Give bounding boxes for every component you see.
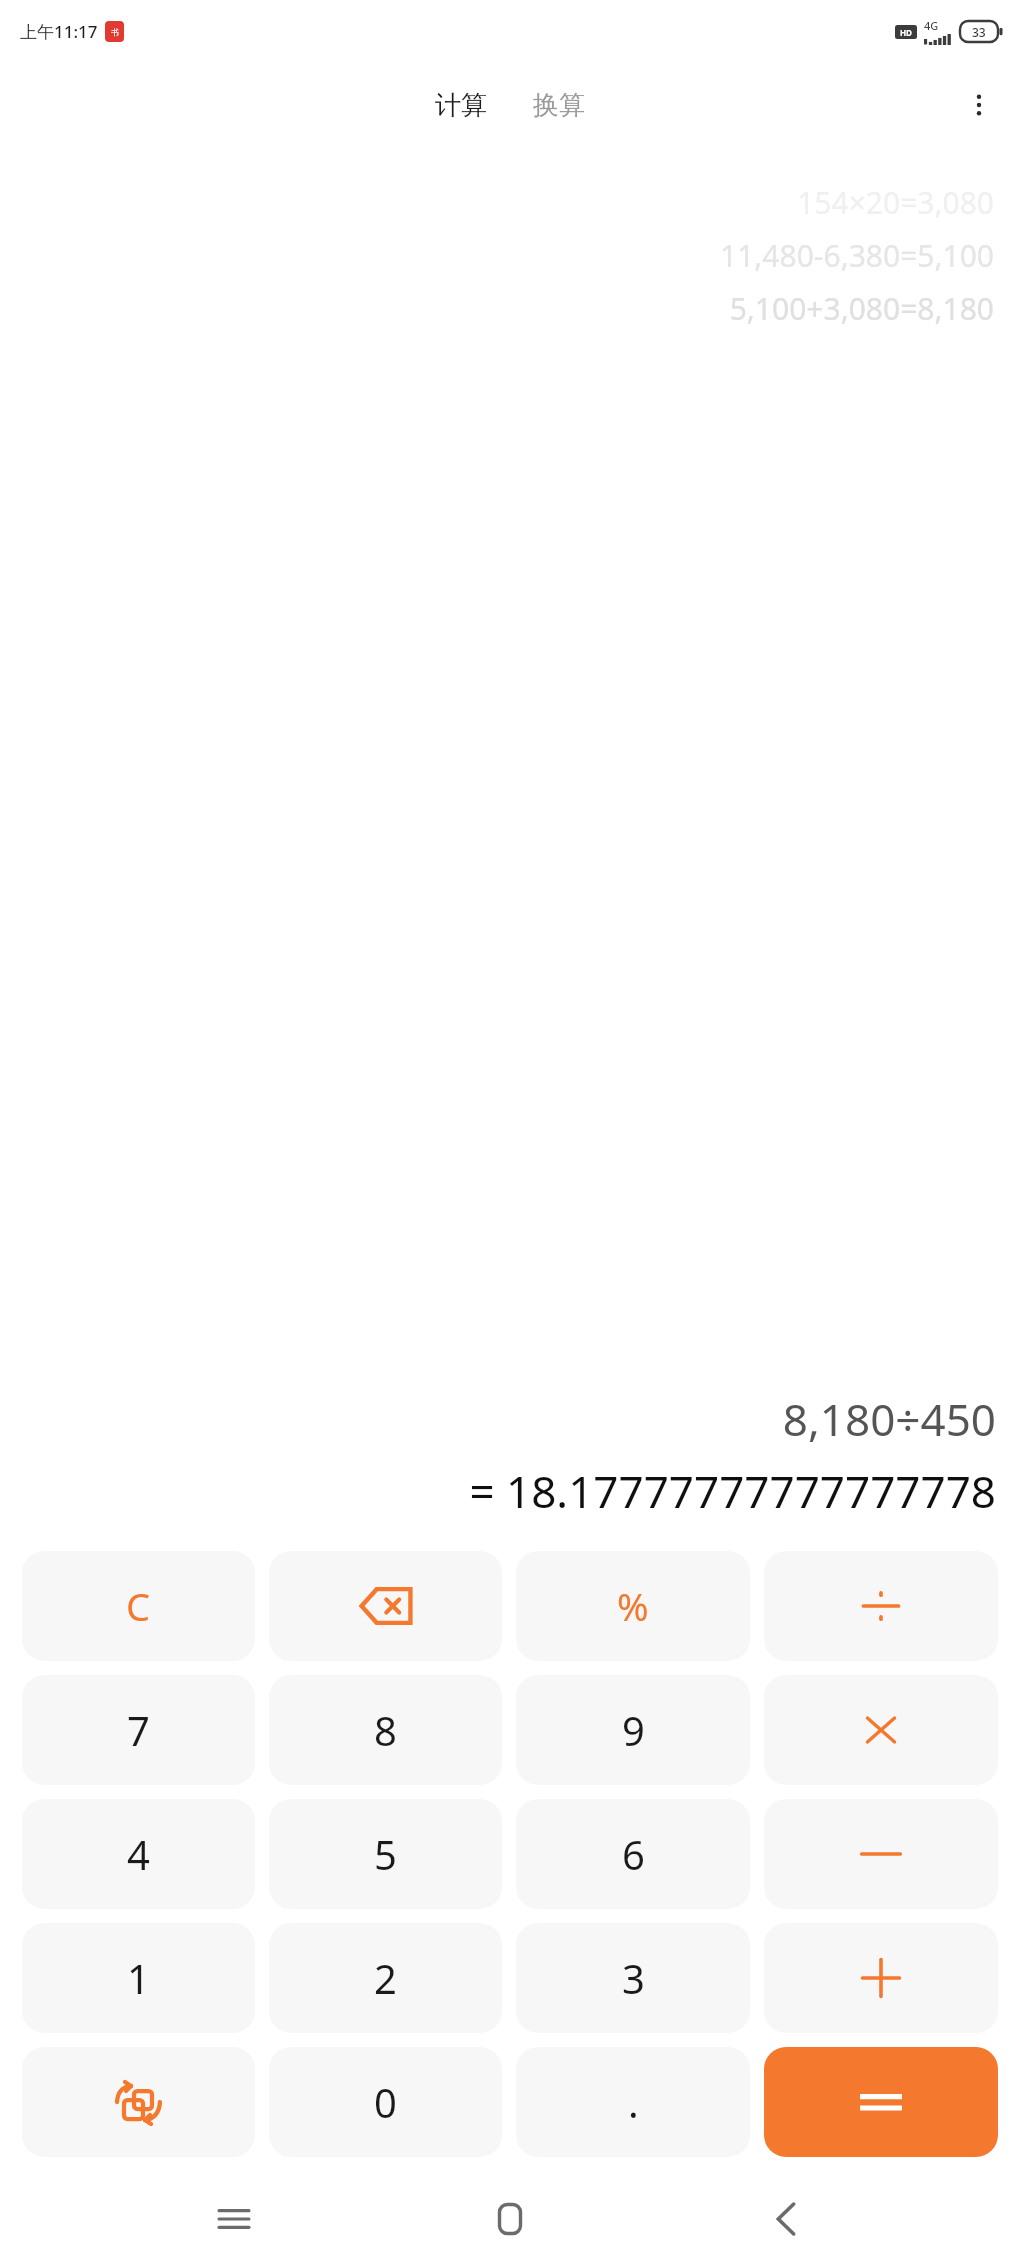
staticText: 11,480-6,380=5,100 [719, 235, 994, 276]
other: Backspace [360, 1587, 412, 1625]
staticText: 7 [127, 1703, 150, 1757]
other: Equals [858, 2087, 904, 2117]
staticText: 154×20=3,080 [797, 182, 994, 223]
staticText: 33 [972, 24, 986, 40]
staticText: 5,100+3,080=8,180 [729, 288, 994, 329]
button[interactable]: Multiply [764, 1675, 998, 1785]
other: Divide [859, 1584, 903, 1628]
button[interactable]: 7 [22, 1675, 255, 1785]
staticText: . [628, 2075, 639, 2129]
other: Clear [126, 1580, 151, 1632]
button[interactable]: 1 [22, 1923, 255, 2033]
staticText: 8,180÷450 [782, 1389, 996, 1449]
staticText: 1 [127, 1951, 150, 2005]
staticText: 9 [622, 1703, 645, 1757]
staticText: 2 [374, 1951, 397, 2005]
button[interactable]: 换算 [523, 81, 595, 130]
staticText: 上午11:17 [20, 20, 98, 43]
button[interactable]: Recent apps [192, 2177, 276, 2261]
button[interactable]: Minus [764, 1799, 998, 1909]
staticText: = 18.17777777777777778 [469, 1461, 996, 1521]
button[interactable]: Divide [764, 1551, 998, 1661]
staticText: 8 [374, 1703, 397, 1757]
other: Multiply [861, 1710, 901, 1750]
other: Plus [859, 1956, 903, 2000]
button[interactable]: 2 [269, 1923, 502, 2033]
button[interactable]: Back [744, 2177, 828, 2261]
button[interactable]: Convert [22, 2047, 255, 2157]
staticText: 0 [374, 2075, 397, 2129]
other: Percent [617, 1580, 649, 1632]
button[interactable]: 11,480-6,380=5,100 [719, 235, 994, 276]
staticText: % [617, 1580, 649, 1632]
button[interactable]: 计算 [425, 81, 497, 130]
button[interactable]: 0 [269, 2047, 502, 2157]
staticText: 书 [111, 27, 119, 37]
staticText: 换算 [533, 89, 585, 122]
staticText: C [126, 1580, 151, 1632]
staticText: 计算 [435, 89, 487, 122]
button[interactable]: . [516, 2047, 750, 2157]
button[interactable]: 154×20=3,080 [797, 182, 994, 223]
button[interactable]: 5,100+3,080=8,180 [729, 288, 994, 329]
other: Minus [859, 1844, 903, 1864]
staticText: 5 [374, 1827, 397, 1881]
button[interactable]: 3 [516, 1923, 750, 2033]
button[interactable]: 5 [269, 1799, 502, 1909]
button[interactable]: Plus [764, 1923, 998, 2033]
button[interactable]: 6 [516, 1799, 750, 1909]
other: Convert [114, 2077, 164, 2127]
staticText: 6 [622, 1827, 645, 1881]
button[interactable]: Home [468, 2177, 552, 2261]
button[interactable]: 9 [516, 1675, 750, 1785]
button[interactable]: More options [952, 78, 1006, 132]
button[interactable]: Backspace [269, 1551, 502, 1661]
staticText: 4 [127, 1827, 150, 1881]
staticText: HD [900, 27, 912, 38]
button[interactable]: Clear [22, 1551, 255, 1661]
button[interactable]: 4 [22, 1799, 255, 1909]
staticText: 3 [622, 1951, 645, 2005]
button[interactable]: Equals [764, 2047, 998, 2157]
button[interactable]: Percent [516, 1551, 750, 1661]
staticText: 4G [924, 18, 939, 33]
button[interactable]: 8 [269, 1675, 502, 1785]
